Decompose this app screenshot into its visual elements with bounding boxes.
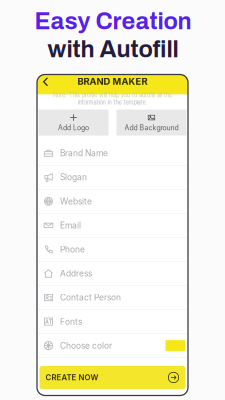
button[interactable]: Email — [37, 214, 188, 238]
staticText: Email — [60, 220, 81, 230]
button[interactable]: Address — [37, 262, 188, 286]
button[interactable]: CREATE NOW — [39, 366, 185, 389]
staticText: Address — [60, 268, 92, 279]
staticText: Fonts — [60, 316, 82, 327]
button[interactable]: Fonts — [37, 310, 188, 334]
staticText: Add Background — [124, 124, 178, 132]
staticText: Note: This profile will help you to auto… — [53, 92, 172, 99]
staticText: Slogan — [60, 172, 87, 182]
staticText: CREATE NOW — [45, 373, 98, 382]
button[interactable]: Website — [37, 190, 188, 214]
button[interactable]: Brand Name — [37, 141, 188, 166]
button[interactable]: Slogan — [37, 166, 188, 190]
button[interactable]: Back — [40, 75, 51, 89]
button[interactable]: Contact Person — [37, 286, 188, 310]
staticText: BRAND MAKER — [77, 76, 147, 87]
button[interactable]: Choose color — [37, 334, 188, 358]
staticText: Contact Person — [60, 292, 121, 303]
staticText: Brand Name — [60, 148, 108, 158]
staticText: Website — [60, 196, 92, 206]
staticText: Add Logo — [58, 124, 89, 132]
staticText: information in the template. — [77, 99, 147, 106]
staticText: with Autofill — [47, 37, 178, 62]
button[interactable]: Phone — [37, 238, 188, 262]
button[interactable]: Add Logo — [38, 109, 108, 135]
staticText: Phone — [60, 244, 85, 255]
staticText: Easy Creation — [34, 9, 191, 34]
button[interactable]: Add Background — [116, 109, 186, 135]
staticText: Choose color — [60, 341, 112, 351]
